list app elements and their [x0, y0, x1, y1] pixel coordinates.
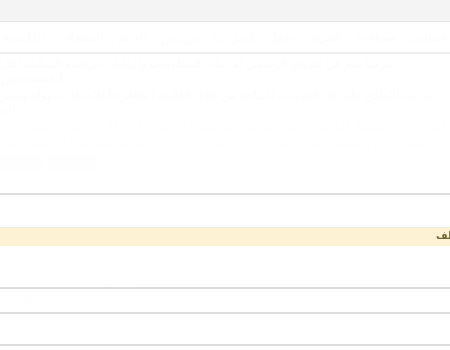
button[interactable]: ملف — [0, 227, 450, 246]
staticText: ملف — [436, 230, 450, 242]
